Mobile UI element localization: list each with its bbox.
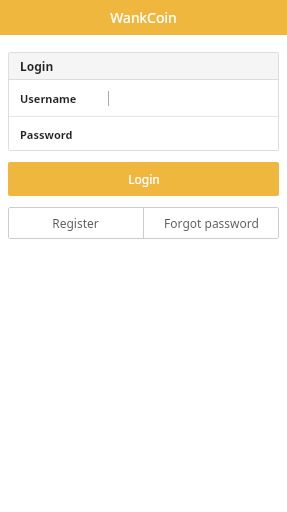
button[interactable]: Register <box>8 207 143 239</box>
staticText: Password <box>20 127 73 142</box>
staticText: Username <box>20 91 77 106</box>
staticText: Login <box>128 171 160 187</box>
button[interactable]: Login <box>8 162 279 196</box>
staticText: WankCoin <box>110 8 177 27</box>
staticText: Register <box>52 215 99 231</box>
staticText: Login <box>20 58 54 74</box>
staticText: Forgot password <box>164 215 259 231</box>
button[interactable]: Username <box>8 80 279 116</box>
button[interactable]: Forgot password <box>144 207 279 239</box>
button[interactable]: Password <box>8 117 279 151</box>
